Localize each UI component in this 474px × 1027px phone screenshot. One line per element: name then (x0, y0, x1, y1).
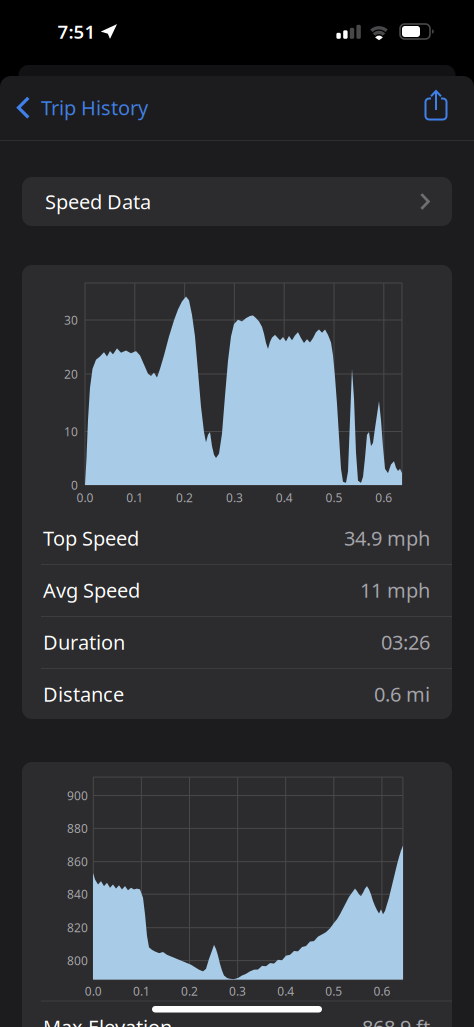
button[interactable]: Trip History (16, 92, 148, 122)
staticText: 20 (64, 366, 78, 382)
staticText: 0.6 mi (374, 681, 430, 707)
staticText: 0.5 (325, 489, 342, 505)
staticText: 0 (71, 477, 78, 493)
staticText: Distance (43, 681, 124, 707)
staticText: 900 (67, 787, 88, 803)
staticText: 0.6 (375, 489, 392, 505)
staticText: 820 (67, 920, 88, 936)
staticText: 0.0 (85, 983, 102, 999)
staticText: 860 (67, 854, 88, 869)
staticText: Max Elevation (43, 1014, 172, 1027)
staticText: Top Speed (43, 525, 139, 551)
button[interactable]: Share (420, 88, 450, 122)
staticText: 0.6 (373, 983, 390, 999)
staticText: 840 (67, 886, 88, 902)
staticText: 868.9 ft (362, 1014, 430, 1027)
staticText: 30 (64, 312, 78, 328)
staticText: Avg Speed (43, 577, 140, 603)
staticText: 0.1 (133, 983, 150, 999)
staticText: 0.4 (276, 489, 293, 505)
staticText: 11 mph (360, 577, 430, 603)
staticText: 0.5 (325, 983, 342, 999)
staticText: 880 (67, 820, 88, 836)
staticText: 7:51 (57, 19, 95, 44)
staticText: 03:26 (381, 629, 430, 655)
staticText: 0.4 (277, 983, 294, 999)
staticText: Trip History (41, 94, 148, 121)
staticText: 0.0 (76, 489, 93, 505)
staticText: 0.2 (176, 489, 193, 505)
staticText: 34.9 mph (344, 525, 430, 551)
staticText: 0.3 (226, 489, 243, 505)
staticText: 800 (67, 953, 88, 968)
staticText: Duration (43, 629, 125, 655)
staticText: Speed Data (45, 188, 151, 215)
staticText: 0.3 (229, 983, 246, 999)
staticText: 0.1 (126, 489, 143, 505)
staticText: 10 (64, 423, 78, 439)
button[interactable]: Speed Data (22, 177, 452, 226)
staticText: 0.2 (181, 983, 198, 999)
